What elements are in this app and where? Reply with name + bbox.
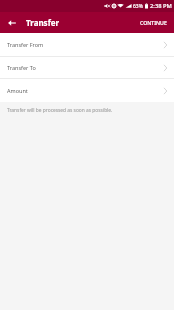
staticText: Transfer From	[7, 41, 44, 48]
button[interactable]: Back	[0, 12, 24, 33]
button[interactable]: Transfer To	[0, 57, 174, 78]
button[interactable]: Amount	[0, 79, 174, 102]
button[interactable]: Transfer From	[0, 33, 174, 56]
staticText: CONTINUE	[140, 19, 167, 26]
button[interactable]: CONTINUE	[133, 14, 174, 31]
staticText: 2:38 PM	[150, 2, 172, 10]
staticText: 63%	[133, 3, 143, 10]
staticText: Transfer will be processed as soon as po…	[7, 107, 113, 114]
staticText: Transfer	[26, 17, 60, 28]
staticText: Amount	[7, 87, 28, 94]
staticText: Transfer To	[7, 64, 36, 71]
